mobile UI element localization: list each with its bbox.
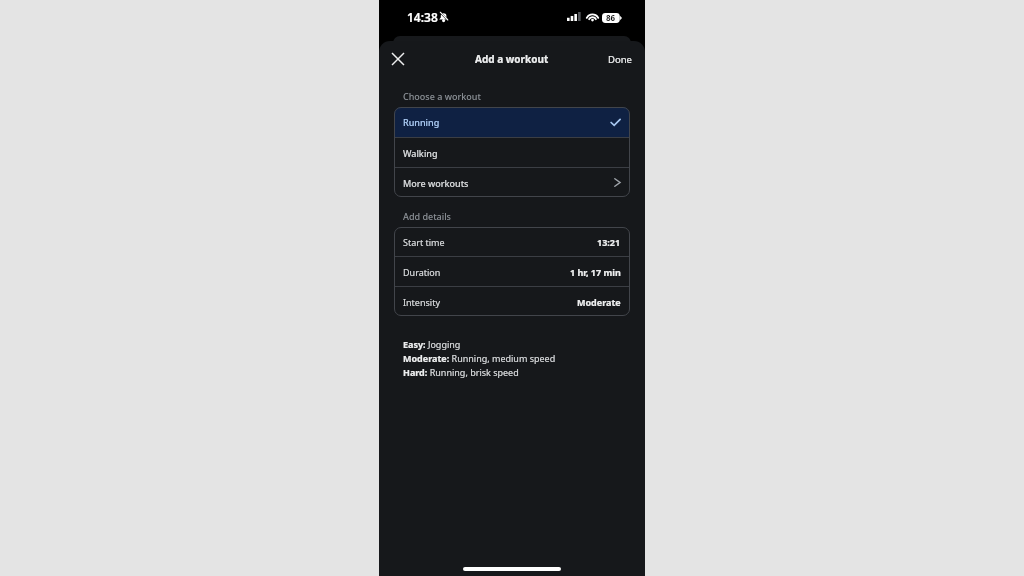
button[interactable]: Done bbox=[604, 48, 636, 71]
staticText: 86 bbox=[606, 12, 616, 23]
button[interactable]: Start time bbox=[394, 227, 630, 256]
button[interactable]: Walking bbox=[394, 138, 630, 167]
button[interactable]: Running bbox=[394, 107, 630, 137]
staticText: Hard: Running, brisk speed bbox=[403, 366, 519, 378]
button[interactable]: Duration bbox=[394, 257, 630, 286]
button[interactable]: More workouts bbox=[394, 168, 630, 197]
staticText: Moderate: Running, medium speed bbox=[403, 352, 556, 364]
button[interactable]: Close bbox=[385, 46, 411, 72]
staticText: Easy: Jogging bbox=[403, 338, 461, 350]
staticText: 13:21 bbox=[597, 236, 621, 248]
staticText: More workouts bbox=[403, 177, 469, 189]
staticText: Running bbox=[403, 116, 440, 128]
staticText: Moderate bbox=[577, 296, 621, 308]
staticText: 1 hr, 17 min bbox=[570, 266, 621, 278]
staticText: Choose a workout bbox=[403, 90, 481, 102]
staticText: 14:38 bbox=[407, 9, 438, 25]
button[interactable]: Intensity bbox=[394, 287, 630, 316]
staticText: Add details bbox=[403, 210, 451, 222]
staticText: Intensity bbox=[403, 296, 440, 308]
staticText: Duration bbox=[403, 266, 441, 278]
staticText: Done bbox=[608, 53, 632, 66]
staticText: Start time bbox=[403, 236, 445, 248]
staticText: Walking bbox=[403, 147, 438, 159]
staticText: Add a workout bbox=[475, 52, 549, 66]
